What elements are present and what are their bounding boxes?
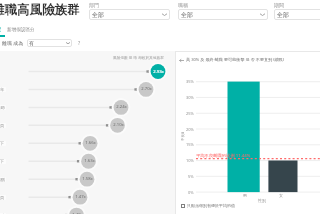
staticText: 業務部門人員 — [0, 123, 5, 128]
staticText: 25% — [186, 111, 194, 116]
staticText: 只顯示個別有優於平均的值 — [187, 203, 235, 208]
staticText: ? — [78, 40, 81, 46]
button[interactable]: 全部 — [178, 9, 268, 20]
staticText: 全部 — [277, 11, 289, 19]
staticText: 2.93x — [153, 69, 164, 75]
staticText: 1.63x — [84, 158, 95, 164]
staticText: 高 30% 及 最終·離職 要可能衝擊 是 否 不要直到 (續戰) — [186, 57, 284, 63]
staticText: 5% — [188, 174, 194, 179]
staticText: 0% — [188, 190, 194, 195]
staticText: 期間 — [274, 2, 284, 8]
other: 返回 — [179, 58, 184, 63]
button[interactable]: 全部 — [274, 9, 320, 20]
staticText: 1.58x — [82, 176, 93, 182]
staticText: 20% — [186, 127, 194, 132]
staticText: 通勤一小時 — [0, 213, 5, 214]
staticText: 30% — [186, 95, 194, 100]
staticText: 1.47x — [75, 194, 86, 200]
staticText: 部門 — [89, 2, 99, 8]
staticText: 新增假設區分 — [7, 27, 34, 33]
button[interactable]: 全部 — [89, 9, 170, 20]
staticText: 女 — [279, 193, 283, 198]
staticText: 35% — [186, 79, 194, 84]
staticText: 2.10x — [113, 122, 124, 128]
staticText: 月薪三萬以下 — [0, 159, 5, 164]
staticText: 15% — [186, 142, 194, 147]
staticText: 全部 — [92, 11, 104, 19]
staticText: 單身未婚 — [0, 105, 5, 110]
staticText: 無主管職稱 — [0, 177, 5, 182]
staticText: 性別 — [258, 198, 266, 203]
staticText: 二十五歲以下 — [0, 141, 5, 146]
staticText: 平均不良離職的比例 11.44% — [196, 152, 251, 158]
staticText: 不良離職率 — [181, 132, 186, 141]
staticText: 職稱 — [178, 2, 188, 8]
staticText: 全部 — [181, 11, 193, 19]
button[interactable]: 只顯示個別有優於平均的值 — [181, 203, 235, 208]
staticText: 2.70x — [141, 86, 152, 92]
staticText: 離職 成為 — [2, 40, 24, 47]
staticText: 風險倍數 是 指 相較於其他族群 — [113, 55, 164, 60]
staticText: 研發部門人員 — [0, 195, 5, 200]
button[interactable]: 說明 — [76, 40, 82, 46]
button[interactable]: 總覽 — [0, 27, 5, 37]
button[interactable]: 返回 — [179, 57, 284, 63]
button[interactable]: 新增假設區分 — [7, 27, 34, 37]
staticText: 離職高風險族群 — [0, 2, 80, 18]
staticText: 1.40x — [72, 212, 83, 214]
staticText: 2.24x — [116, 104, 127, 110]
staticText: 年資未滿一年 — [0, 87, 5, 92]
staticText: 10% — [186, 158, 194, 163]
button[interactable]: 有 — [27, 39, 72, 47]
staticText: 有 — [29, 40, 34, 46]
staticText: 總覽 — [0, 27, 2, 33]
staticText: 男 — [243, 193, 247, 198]
staticText: 1.66x — [85, 140, 96, 146]
